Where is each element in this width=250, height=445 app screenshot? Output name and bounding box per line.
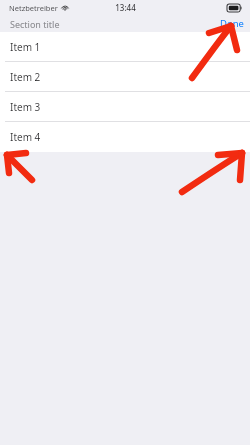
staticText: Item 1 <box>10 40 41 54</box>
button[interactable]: Item 1 <box>0 32 250 62</box>
staticText: Done <box>220 17 244 30</box>
button[interactable]: Item 2 <box>0 62 250 92</box>
button[interactable]: Done <box>214 15 250 32</box>
staticText: Item 4 <box>10 130 41 144</box>
staticText: Section title <box>10 18 60 30</box>
staticText: Item 3 <box>10 100 41 114</box>
staticText: 13:44 <box>115 2 136 13</box>
staticText: Item 2 <box>10 70 41 84</box>
staticText: Netzbetreiber <box>9 3 58 13</box>
button[interactable]: Item 4 <box>0 122 250 152</box>
button[interactable]: Item 3 <box>0 92 250 122</box>
